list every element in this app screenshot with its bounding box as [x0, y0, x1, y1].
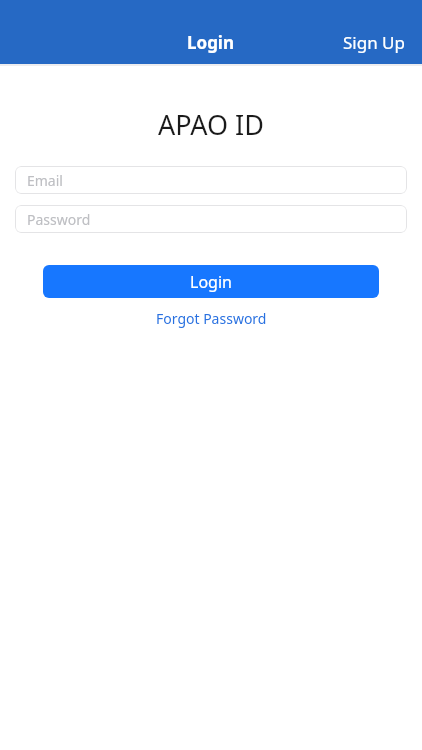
- button[interactable]: Forgot Password: [148, 306, 275, 331]
- staticText: Forgot Password: [156, 309, 267, 328]
- button[interactable]: Sign Up: [333, 29, 415, 56]
- button[interactable]: Password: [15, 205, 407, 233]
- staticText: APAO ID: [0, 106, 422, 143]
- staticText: Password: [27, 210, 91, 229]
- button[interactable]: Email: [15, 166, 407, 194]
- staticText: Login: [190, 271, 232, 293]
- button[interactable]: Login: [43, 265, 379, 298]
- staticText: Email: [27, 171, 63, 190]
- staticText: Login: [187, 31, 235, 54]
- button[interactable]: Login: [177, 29, 245, 56]
- staticText: Sign Up: [343, 31, 405, 54]
